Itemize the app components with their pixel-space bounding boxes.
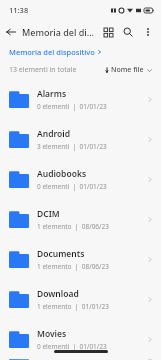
button[interactable]: Audiobooks bbox=[0, 159, 161, 199]
button[interactable]: Memoria del dispositivo bbox=[9, 47, 101, 57]
staticText: 3 elementi | 01/01/23 bbox=[37, 142, 107, 151]
staticText: Movies bbox=[37, 328, 67, 340]
button[interactable]: Back bbox=[0, 21, 22, 43]
staticText: Nome file bbox=[111, 65, 144, 75]
staticText: 13 elementi in totale bbox=[9, 65, 77, 75]
button[interactable]: Download bbox=[0, 279, 161, 319]
staticText: 0 elementi | 01/01/23 bbox=[37, 102, 107, 111]
staticText: 0 elementi | 01/01/23 bbox=[37, 342, 107, 351]
staticText: Alarms bbox=[37, 88, 67, 100]
staticText: 1 elemento | 08/06/23 bbox=[37, 222, 109, 231]
staticText: 0 elementi | 01/01/23 bbox=[37, 182, 107, 191]
staticText: 11:38 bbox=[9, 5, 29, 15]
button[interactable]: Nome file bbox=[105, 65, 152, 75]
button[interactable]: More options bbox=[138, 22, 158, 42]
button[interactable]: Grid view bbox=[98, 22, 118, 42]
staticText: Android bbox=[37, 128, 70, 140]
button[interactable]: Music bbox=[0, 359, 161, 360]
staticText: 1 elemento | 01/01/23 bbox=[37, 302, 109, 311]
button[interactable]: DCIM bbox=[0, 199, 161, 239]
button[interactable]: Documents bbox=[0, 239, 161, 279]
staticText: Memoria del dispositivo bbox=[9, 47, 95, 57]
button[interactable]: Movies bbox=[0, 319, 161, 359]
button[interactable]: Search bbox=[118, 22, 138, 42]
button[interactable]: Android bbox=[0, 119, 161, 159]
staticText: Audiobooks bbox=[37, 168, 87, 180]
staticText: DCIM bbox=[37, 208, 60, 220]
button[interactable]: Alarms bbox=[0, 79, 161, 119]
staticText: Download bbox=[37, 288, 79, 300]
staticText: Memoria del disposit... bbox=[22, 26, 98, 38]
staticText: 1 elemento | 08/06/23 bbox=[37, 262, 109, 271]
staticText: Documents bbox=[37, 248, 85, 260]
